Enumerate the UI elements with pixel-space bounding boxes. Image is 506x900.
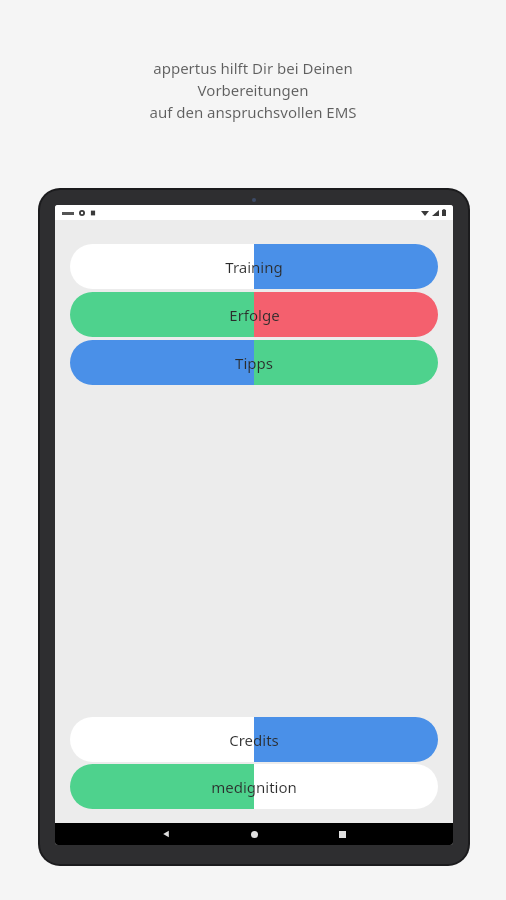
- staticText: appertus hilft Dir bei Deinen Vorbereitu…: [24, 58, 482, 123]
- button[interactable]: Tipps: [70, 340, 438, 385]
- button[interactable]: Training: [70, 244, 438, 289]
- button[interactable]: Home: [210, 823, 298, 845]
- button[interactable]: Erfolge: [70, 292, 438, 337]
- button[interactable]: Credits: [70, 717, 438, 762]
- staticText: medignition: [211, 777, 297, 797]
- staticText: Credits: [229, 730, 279, 750]
- button[interactable]: Back: [122, 823, 210, 845]
- staticText: Tipps: [235, 353, 273, 373]
- button[interactable]: Recent apps: [298, 823, 386, 845]
- staticText: Erfolge: [229, 305, 280, 325]
- staticText: Training: [225, 257, 283, 277]
- button[interactable]: medignition: [70, 764, 438, 809]
